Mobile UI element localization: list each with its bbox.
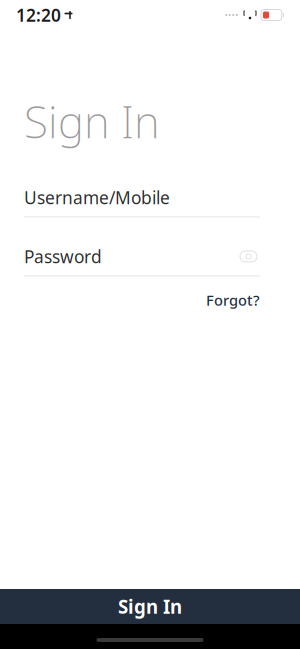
button[interactable]: Sign In — [0, 589, 300, 624]
staticText: 12:20 — [16, 3, 61, 26]
staticText: Sign In — [24, 92, 160, 150]
staticText: Sign In — [118, 594, 182, 619]
button[interactable]: Show password — [237, 246, 260, 267]
button[interactable]: Forgot? — [206, 286, 260, 314]
staticText: Forgot? — [206, 290, 260, 310]
staticText: Username/Mobile — [24, 186, 170, 209]
staticText: Password — [24, 245, 102, 268]
